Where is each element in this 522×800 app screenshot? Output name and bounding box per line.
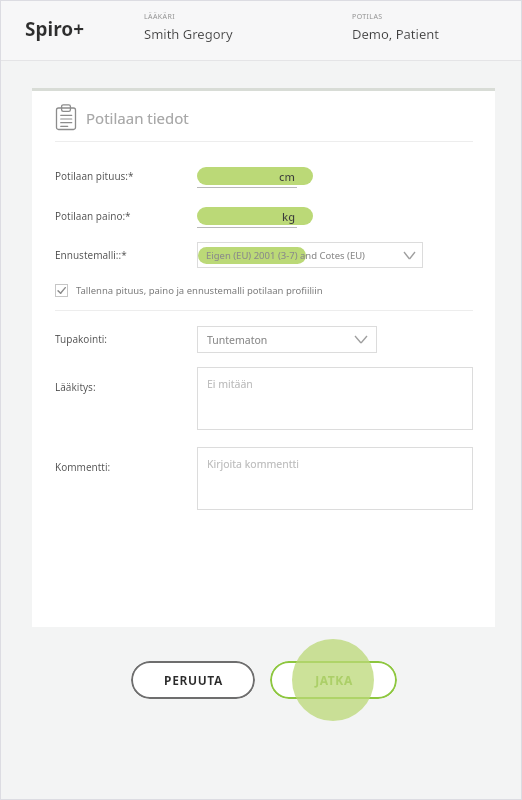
button[interactable]: Eigen (EU) 2001 (3-7) and Cotes (EU): [197, 242, 423, 268]
staticText: Potilaan pituus:*: [55, 169, 134, 183]
staticText: Potilaan paino:*: [55, 209, 131, 223]
staticText: Ennustemalli::*: [55, 248, 127, 262]
staticText: Smith Gregory: [144, 25, 233, 43]
staticText: Demo, Patient: [352, 25, 439, 43]
staticText: Kirjoita kommentti: [207, 457, 300, 471]
staticText: POTILAS: [352, 12, 383, 22]
staticText: Tallenna pituus, paino ja ennustemalli p…: [76, 284, 323, 297]
staticText: Potilaan tiedot: [86, 108, 189, 128]
staticText: Tuntematon: [207, 333, 268, 347]
button[interactable]: Spiro+: [25, 16, 85, 42]
button[interactable]: cm: [197, 164, 313, 188]
button[interactable]: JATKA: [270, 661, 397, 699]
button[interactable]: PERUUTA: [131, 661, 255, 699]
button[interactable]: Tuntematon: [197, 326, 377, 353]
button[interactable]: Kirjoita kommentti: [197, 447, 473, 510]
staticText: Lääkitys:: [55, 380, 96, 394]
button[interactable]: Tallenna pituus, paino ja ennustemalli p…: [55, 284, 323, 297]
staticText: cm: [279, 169, 295, 184]
staticText: Tupakointi:: [55, 332, 108, 346]
staticText: Kommentti:: [55, 460, 111, 474]
staticText: LÄÄKÄRI: [144, 12, 175, 22]
staticText: Eigen (EU) 2001 (3-7) and Cotes (EU): [206, 249, 365, 262]
staticText: Ei mitään: [207, 377, 253, 391]
staticText: PERUUTA: [164, 672, 223, 688]
staticText: Spiro+: [25, 16, 85, 42]
staticText: JATKA: [315, 672, 353, 688]
staticText: kg: [282, 209, 295, 224]
button[interactable]: Ei mitään: [197, 367, 473, 430]
button[interactable]: kg: [197, 204, 313, 228]
